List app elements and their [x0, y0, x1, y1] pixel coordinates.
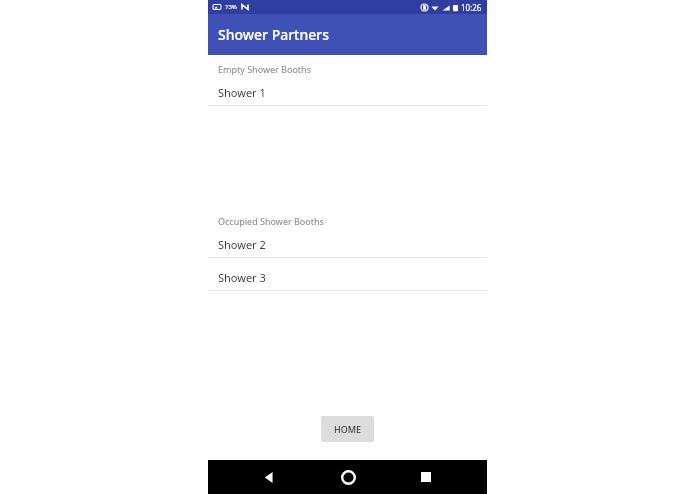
button[interactable]: HOME: [321, 416, 374, 442]
button[interactable]: Shower 2: [208, 231, 487, 257]
button[interactable]: Shower 3: [208, 264, 487, 290]
staticText: Shower Partners: [218, 25, 330, 44]
button[interactable]: Shower 1: [208, 79, 487, 105]
staticText: HOME: [334, 423, 362, 435]
staticText: Shower 3: [218, 270, 266, 285]
staticText: 10:26: [461, 2, 482, 13]
staticText: Empty Shower Booths: [218, 63, 311, 75]
button[interactable]: Home: [331, 460, 365, 494]
staticText: Shower 1: [218, 85, 266, 100]
staticText: Shower 2: [218, 237, 266, 252]
button[interactable]: Recent apps: [409, 460, 443, 494]
staticText: 73%: [225, 3, 237, 11]
staticText: Occupied Shower Booths: [218, 215, 324, 227]
button[interactable]: Back: [252, 460, 286, 494]
